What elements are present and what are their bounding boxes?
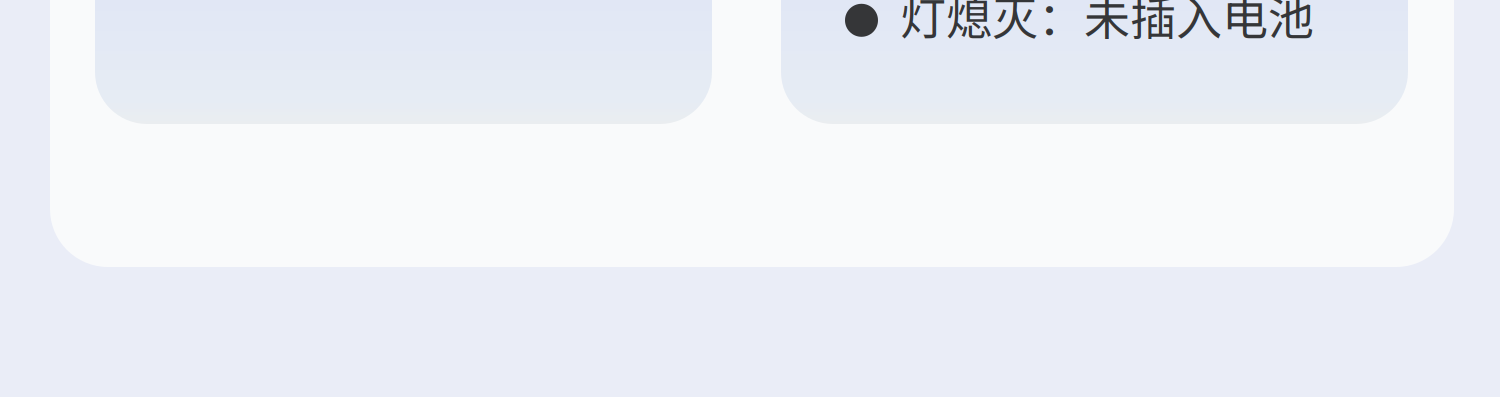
button[interactable]: 指示灯状态 [95, 0, 712, 124]
button[interactable]: 灯熄灭：未插入电池 [781, 0, 1408, 124]
staticText: 灯熄灭：未插入电池 [900, 0, 1314, 49]
